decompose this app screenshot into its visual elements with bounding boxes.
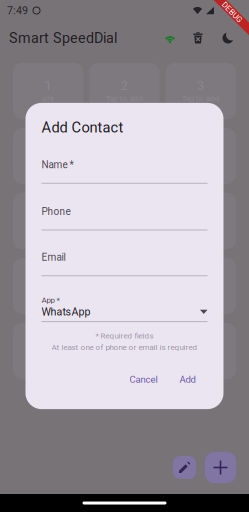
button[interactable]: 11 — [89, 258, 160, 314]
staticText: * Required fields — [95, 331, 153, 340]
staticText: Tap to add — [29, 224, 67, 233]
button[interactable]: Add — [171, 369, 203, 390]
staticText: Phone — [41, 206, 70, 217]
staticText: 1 — [45, 79, 52, 93]
button[interactable]: Add contact — [205, 452, 236, 483]
staticText: Cancel — [129, 374, 157, 385]
button[interactable]: 10 — [13, 258, 83, 314]
staticText: 3 — [197, 79, 204, 93]
staticText: Add Contact — [41, 119, 123, 136]
staticText: Email — [41, 251, 65, 263]
button[interactable]: Name * — [41, 159, 207, 184]
staticText: App * — [41, 295, 59, 305]
staticText: DEBUG — [219, 7, 244, 17]
staticText: Tap to add — [182, 94, 220, 103]
button[interactable]: Toggle dark mode — [220, 30, 236, 46]
button[interactable]: Email — [41, 251, 207, 276]
staticText: Tap to add — [182, 224, 220, 233]
button[interactable]: 4 — [13, 128, 83, 184]
button[interactable]: 6 — [166, 128, 236, 184]
staticText: 13 — [41, 339, 55, 353]
button[interactable]: Phone — [41, 206, 207, 230]
button[interactable]: Connection status — [161, 29, 179, 47]
button[interactable]: 5 — [89, 128, 160, 184]
staticText: 7 — [45, 209, 52, 223]
button[interactable]: 7 — [13, 193, 83, 249]
staticText: 12 — [194, 274, 208, 288]
button[interactable]: 14 — [89, 323, 160, 379]
staticText: 11 — [117, 274, 131, 288]
button[interactable]: Clear all contacts — [190, 30, 206, 46]
button[interactable]: Cancel — [121, 369, 165, 390]
staticText: ork — [42, 94, 54, 103]
staticText: 10 — [41, 274, 55, 288]
staticText: Tap to add — [105, 94, 143, 103]
staticText: Tap to add — [105, 224, 143, 233]
button[interactable]: 3 — [166, 63, 236, 119]
staticText: 7:49 — [7, 4, 28, 17]
staticText: Smart SpeedDial — [9, 30, 117, 46]
button[interactable]: 12 — [166, 258, 236, 314]
staticText: 15 — [194, 339, 208, 353]
staticText: 14 — [117, 339, 131, 353]
button[interactable]: 15 — [166, 323, 236, 379]
staticText: WhatsApp — [41, 306, 90, 318]
button[interactable]: 8 — [89, 193, 160, 249]
staticText: Name * — [41, 159, 73, 171]
staticText: 2 — [121, 79, 128, 93]
staticText: At least one of phone or email is requir… — [51, 342, 197, 352]
button[interactable]: Edit contacts — [173, 456, 196, 479]
staticText: Tap to add — [29, 159, 67, 168]
button[interactable]: App * — [41, 295, 207, 322]
button[interactable]: 1 — [13, 63, 83, 119]
staticText: Add — [179, 374, 195, 385]
button[interactable]: 9 — [166, 193, 236, 249]
button[interactable]: 2 — [89, 63, 160, 119]
button[interactable]: 13 — [13, 323, 83, 379]
